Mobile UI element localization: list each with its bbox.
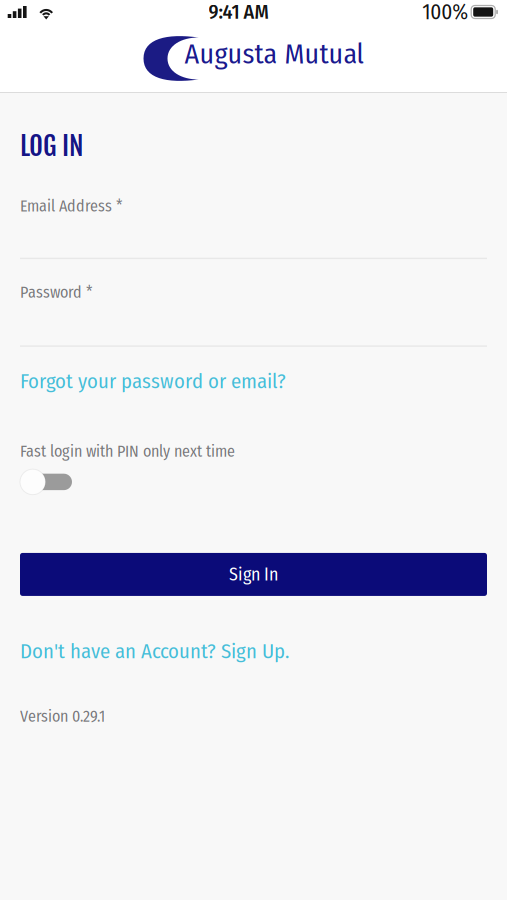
staticText: LOG IN bbox=[20, 129, 83, 162]
staticText: Version 0.29.1 bbox=[20, 707, 105, 726]
staticText: 100% bbox=[422, 0, 468, 25]
button[interactable]: Don't have an Account? Sign Up. bbox=[20, 639, 289, 664]
staticText: Fast login with PIN only next time bbox=[20, 442, 235, 461]
staticText: 9:41 AM bbox=[208, 0, 268, 24]
staticText: Email Address * bbox=[20, 196, 123, 216]
staticText: Forgot your password or email? bbox=[20, 369, 286, 394]
staticText: Augusta Mutual bbox=[184, 37, 363, 71]
staticText: Don't have an Account? Sign Up. bbox=[20, 639, 289, 664]
staticText: Password * bbox=[20, 283, 93, 302]
button[interactable]: Fast login with PIN only next time bbox=[20, 469, 72, 495]
staticText: Sign In bbox=[229, 564, 278, 585]
button[interactable]: Forgot your password or email? bbox=[20, 369, 286, 394]
button[interactable]: Sign In bbox=[20, 553, 487, 596]
